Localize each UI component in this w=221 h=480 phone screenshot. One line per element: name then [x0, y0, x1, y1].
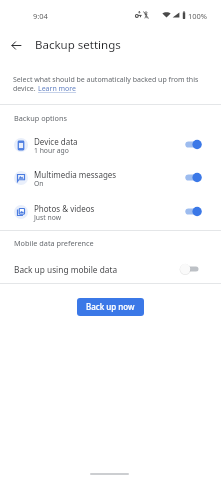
button[interactable]: Toggle on	[184, 172, 202, 183]
button[interactable]: Back up using mobile data	[0, 257, 221, 279]
button[interactable]: Toggle on	[184, 206, 202, 217]
staticText: device.	[13, 84, 38, 94]
staticText: Select what should be automatically back…	[13, 75, 199, 85]
staticText: On	[34, 179, 44, 188]
button[interactable]: Toggle on	[184, 139, 202, 150]
button[interactable]: Back up now	[77, 298, 144, 316]
staticText: Backup settings	[35, 37, 121, 53]
button[interactable]: Learn more	[38, 84, 77, 94]
button[interactable]: Multimedia messages	[0, 161, 221, 194]
staticText: Mobile data preference	[14, 238, 94, 248]
staticText: 100%	[188, 11, 208, 21]
staticText: Device data	[34, 136, 78, 147]
button[interactable]: Photos & videos	[0, 195, 221, 228]
staticText: Back up using mobile data	[14, 264, 118, 275]
button[interactable]: Back	[5, 34, 27, 56]
staticText: Multimedia messages	[34, 169, 117, 180]
staticText: 1 hour ago	[34, 146, 69, 155]
staticText: Just now	[34, 213, 62, 222]
button[interactable]: Device data	[0, 128, 221, 161]
staticText: 9:04	[33, 11, 48, 21]
staticText: Photos & videos	[34, 203, 95, 214]
button[interactable]: Toggle off	[180, 263, 199, 275]
staticText: Backup options	[14, 113, 67, 123]
staticText: Back up now	[86, 301, 135, 312]
